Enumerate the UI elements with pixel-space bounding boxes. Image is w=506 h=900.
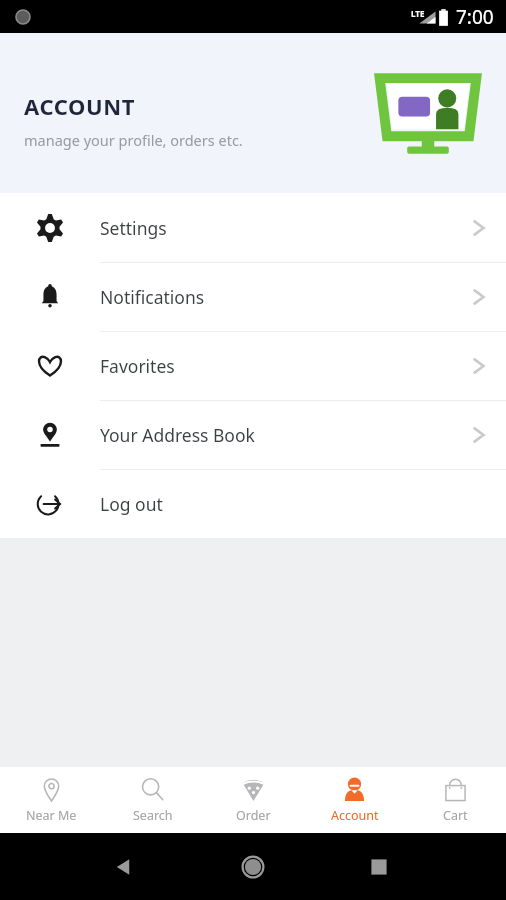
staticText: Notifications [100,285,205,309]
button[interactable]: Account [304,767,405,833]
staticText: Your Address Book [100,423,255,447]
button[interactable]: Settings [0,193,506,262]
staticText: 7:00 [456,4,494,30]
button[interactable]: Back [112,855,136,879]
button[interactable]: Favorites [0,332,506,400]
staticText: Account [331,807,379,824]
button[interactable]: Near Me [0,767,102,833]
button[interactable]: Search [102,767,203,833]
button[interactable]: Cart [405,767,506,833]
button[interactable]: Recent apps [369,857,389,877]
button[interactable]: Order [203,767,304,833]
staticText: Settings [100,216,167,240]
button[interactable]: Notifications [0,263,506,331]
staticText: Order [236,807,271,824]
button[interactable]: Your Address Book [0,401,506,469]
button[interactable]: Log out [0,470,506,538]
button[interactable]: Home [240,854,266,880]
staticText: Near Me [26,807,77,824]
staticText: Favorites [100,354,175,378]
staticText: Log out [100,492,163,516]
staticText: LTE [411,8,425,19]
staticText: manage your profile, orders etc. [24,130,243,150]
staticText: Search [133,807,173,824]
staticText: ACCOUNT [24,91,135,121]
staticText: Cart [443,807,468,824]
